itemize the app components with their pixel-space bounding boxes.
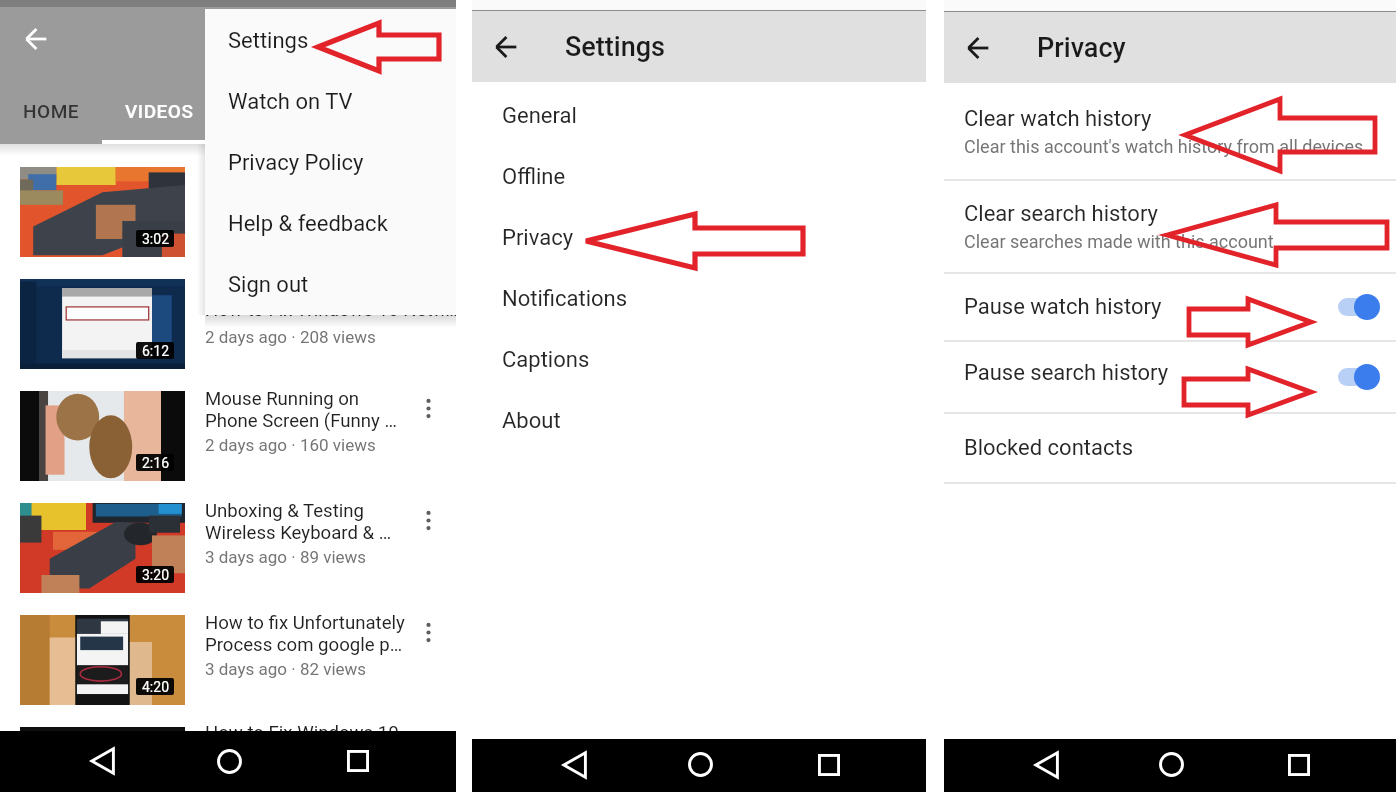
button[interactable]: Back xyxy=(960,12,996,83)
button[interactable]: Help & feedback xyxy=(205,193,456,254)
staticText: Pause search history xyxy=(964,360,1169,386)
staticText: Clear searches made with this account xyxy=(964,231,1274,252)
staticText: 2:16 xyxy=(142,455,169,471)
staticText: 2 days ago · 160 views xyxy=(205,435,376,455)
staticText: Clear watch history xyxy=(964,106,1152,132)
staticText: 3:02 xyxy=(142,231,169,247)
staticText: Pause watch history xyxy=(964,294,1162,320)
button[interactable]: Blocked contacts xyxy=(944,414,1396,482)
button[interactable]: Notifications xyxy=(472,268,926,329)
button[interactable]: Privacy Policy xyxy=(205,132,456,193)
button[interactable]: Offline xyxy=(472,146,926,207)
button[interactable]: Sign out xyxy=(205,254,456,315)
button[interactable]: Clear search history xyxy=(944,180,1396,272)
staticText: Phone Screen (Funny … xyxy=(205,410,397,432)
button[interactable]: General xyxy=(472,85,926,146)
button[interactable]: Privacy xyxy=(472,207,926,268)
button[interactable]: Home xyxy=(1144,738,1198,791)
button[interactable]: About xyxy=(472,390,926,451)
button[interactable]: Recent apps xyxy=(1272,738,1326,791)
button[interactable]: VIDEOS xyxy=(108,84,211,138)
button[interactable]: Pause search history xyxy=(944,341,1396,412)
staticText: Process com google p… xyxy=(205,634,403,656)
button[interactable]: More options xyxy=(415,507,441,533)
button[interactable]: More options xyxy=(415,395,441,421)
staticText: Unboxing & Testing xyxy=(205,500,365,522)
staticText: 3 days ago · 89 views xyxy=(205,547,367,567)
button[interactable]: Clear watch history xyxy=(944,83,1396,179)
button[interactable]: Back xyxy=(76,734,130,788)
staticText: Settings xyxy=(228,28,309,54)
staticText: Blocked contacts xyxy=(964,435,1134,461)
staticText: 3 days ago · 82 views xyxy=(205,659,367,679)
staticText: 2 days ago · 208 views xyxy=(205,327,376,347)
staticText: General xyxy=(502,103,577,129)
staticText: How to fix Unfortunately xyxy=(205,612,405,634)
staticText: Clear search history xyxy=(964,201,1158,227)
staticText: Privacy xyxy=(1037,32,1126,64)
staticText: HOME xyxy=(23,100,80,122)
button[interactable]: HOME xyxy=(0,84,102,138)
staticText: Watch on TV xyxy=(228,89,353,115)
button[interactable]: Home xyxy=(202,734,256,788)
staticText: Mouse Running on xyxy=(205,388,360,410)
staticText: Captions xyxy=(502,347,590,373)
button[interactable]: Settings xyxy=(205,10,456,71)
staticText: Offline xyxy=(502,164,566,190)
button[interactable]: Back xyxy=(488,11,524,82)
staticText: 4:20 xyxy=(142,679,169,695)
button[interactable]: More options xyxy=(415,619,441,645)
staticText: Wireless Keyboard & … xyxy=(205,522,392,544)
button[interactable]: Back xyxy=(1020,738,1074,791)
button[interactable]: Recent apps xyxy=(802,738,856,791)
button[interactable]: Back xyxy=(18,21,54,57)
staticText: 6:12 xyxy=(142,343,169,359)
staticText: VIDEOS xyxy=(125,100,194,122)
staticText: Notifications xyxy=(502,286,628,312)
staticText: Privacy Policy xyxy=(228,150,364,176)
button[interactable]: Captions xyxy=(472,329,926,390)
staticText: Clear this account's watch history from … xyxy=(964,136,1364,157)
button[interactable]: Home xyxy=(673,738,727,791)
staticText: How to Fix Windows 10 xyxy=(205,722,399,744)
staticText: About xyxy=(502,408,561,434)
button[interactable]: Watch on TV xyxy=(205,71,456,132)
button[interactable]: Recent apps xyxy=(331,734,385,788)
staticText: How to Fix Windows 10 Netw… xyxy=(205,299,456,321)
button[interactable]: Pause watch history xyxy=(944,273,1396,341)
staticText: 3:20 xyxy=(142,567,169,583)
staticText: Help & feedback xyxy=(228,211,388,237)
button[interactable]: Back xyxy=(548,738,602,791)
staticText: Privacy xyxy=(502,225,574,251)
staticText: Settings xyxy=(565,31,665,63)
staticText: Sign out xyxy=(228,272,309,298)
